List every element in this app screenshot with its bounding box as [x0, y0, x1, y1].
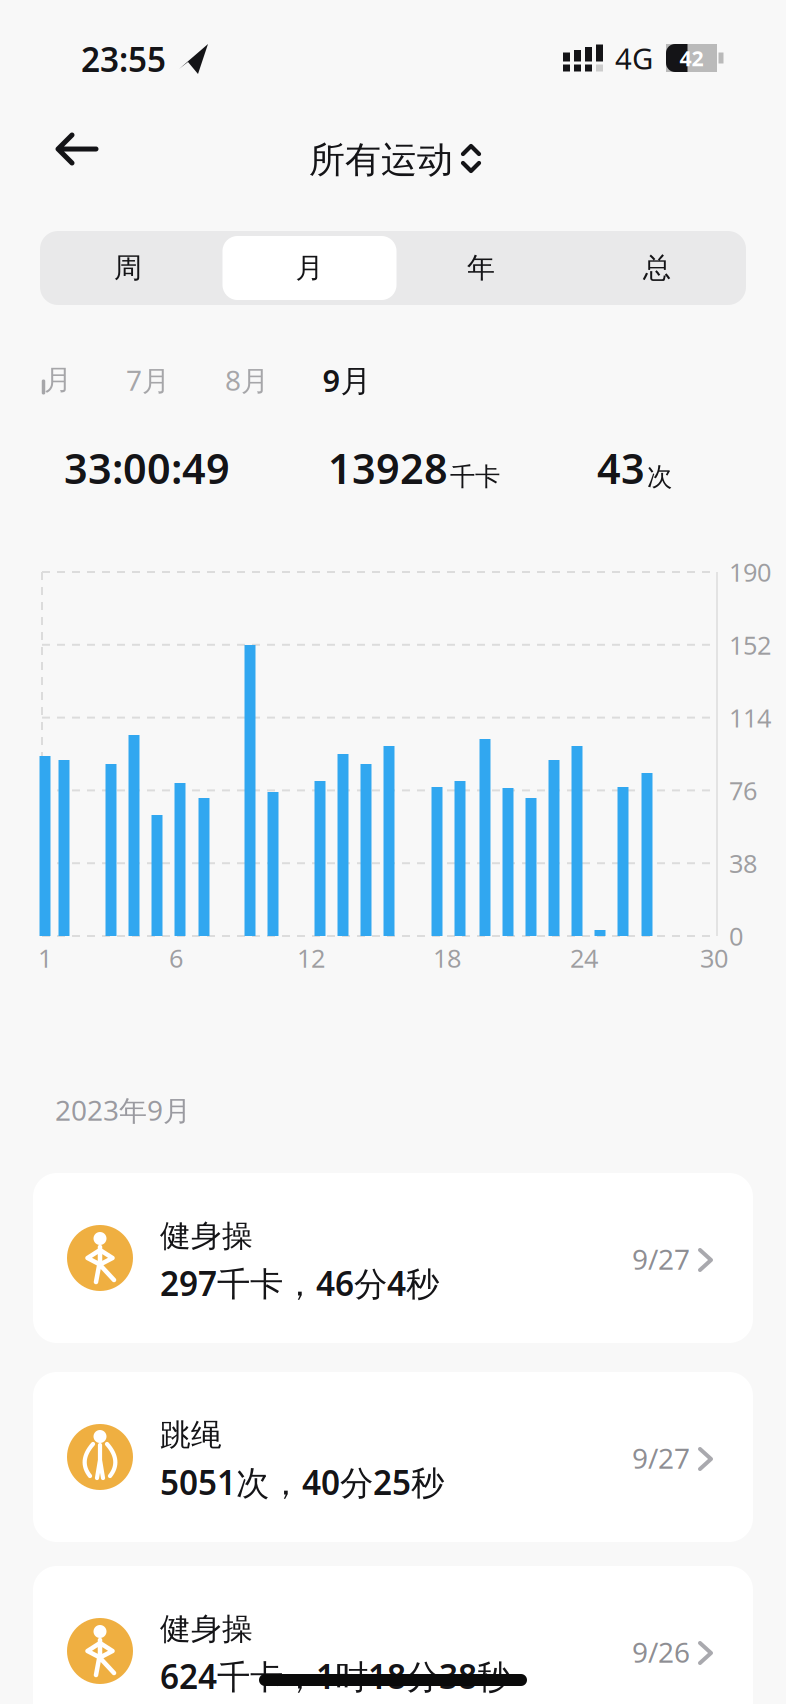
button[interactable]: 月 [44, 358, 72, 402]
staticText: 1 [38, 941, 52, 975]
staticText: 23:55 [81, 37, 166, 81]
staticText: 9月 [322, 360, 371, 400]
staticText: 18 [433, 941, 461, 975]
button[interactable]: 周 [43, 233, 213, 303]
staticText: 38 [729, 846, 757, 880]
staticText: 76 [729, 774, 757, 807]
staticText: 所有运动 [309, 138, 453, 182]
staticText: 健身操 [160, 1217, 253, 1255]
staticText: 152 [729, 628, 771, 662]
staticText: 43 [597, 441, 645, 495]
staticText: 2023年9月 [55, 1091, 191, 1129]
button[interactable]: 健身操 [33, 1173, 753, 1343]
staticText: 9/26 [632, 1633, 690, 1671]
staticText: 24 [570, 941, 598, 975]
staticText: 8月 [225, 361, 269, 399]
staticText: 年 [467, 251, 495, 285]
staticText: 7月 [126, 361, 170, 399]
staticText: 114 [729, 701, 771, 734]
button[interactable]: 7月 [126, 358, 170, 402]
button[interactable]: 年 [396, 233, 566, 303]
staticText: 13928 [328, 441, 448, 495]
staticText: 次 [647, 461, 672, 492]
staticText: 月 [44, 363, 72, 397]
staticText: 5051次，40分25秒 [160, 1460, 444, 1504]
staticText: 9/27 [632, 1240, 690, 1278]
button[interactable]: 8月 [225, 358, 269, 402]
staticText: 297千卡，46分4秒 [160, 1261, 439, 1305]
staticText: 0 [729, 919, 743, 953]
staticText: 9/27 [632, 1439, 690, 1477]
staticText: 千卡 [450, 461, 500, 492]
staticText: 42 [679, 44, 703, 72]
staticText: 健身操 [160, 1610, 253, 1648]
button[interactable]: 9月 [322, 358, 371, 402]
staticText: 33:00:49 [64, 441, 230, 495]
button[interactable]: 跳绳 [33, 1372, 753, 1542]
button[interactable] [47, 135, 107, 185]
staticText: 跳绳 [160, 1416, 222, 1454]
staticText: 624千卡，1时18分38秒 [160, 1654, 510, 1698]
staticText: 周 [114, 251, 142, 285]
staticText: 总 [643, 251, 671, 285]
staticText: 190 [729, 555, 771, 589]
staticText: 12 [297, 941, 325, 975]
button[interactable]: 总 [572, 233, 742, 303]
button[interactable]: 健身操 [33, 1566, 753, 1704]
staticText: 月 [295, 251, 323, 285]
staticText: 6 [169, 941, 183, 975]
staticText: 4G [615, 38, 653, 77]
staticText: 30 [700, 941, 728, 975]
button[interactable]: 月 [224, 233, 394, 303]
button[interactable]: 所有运动 [284, 132, 494, 188]
